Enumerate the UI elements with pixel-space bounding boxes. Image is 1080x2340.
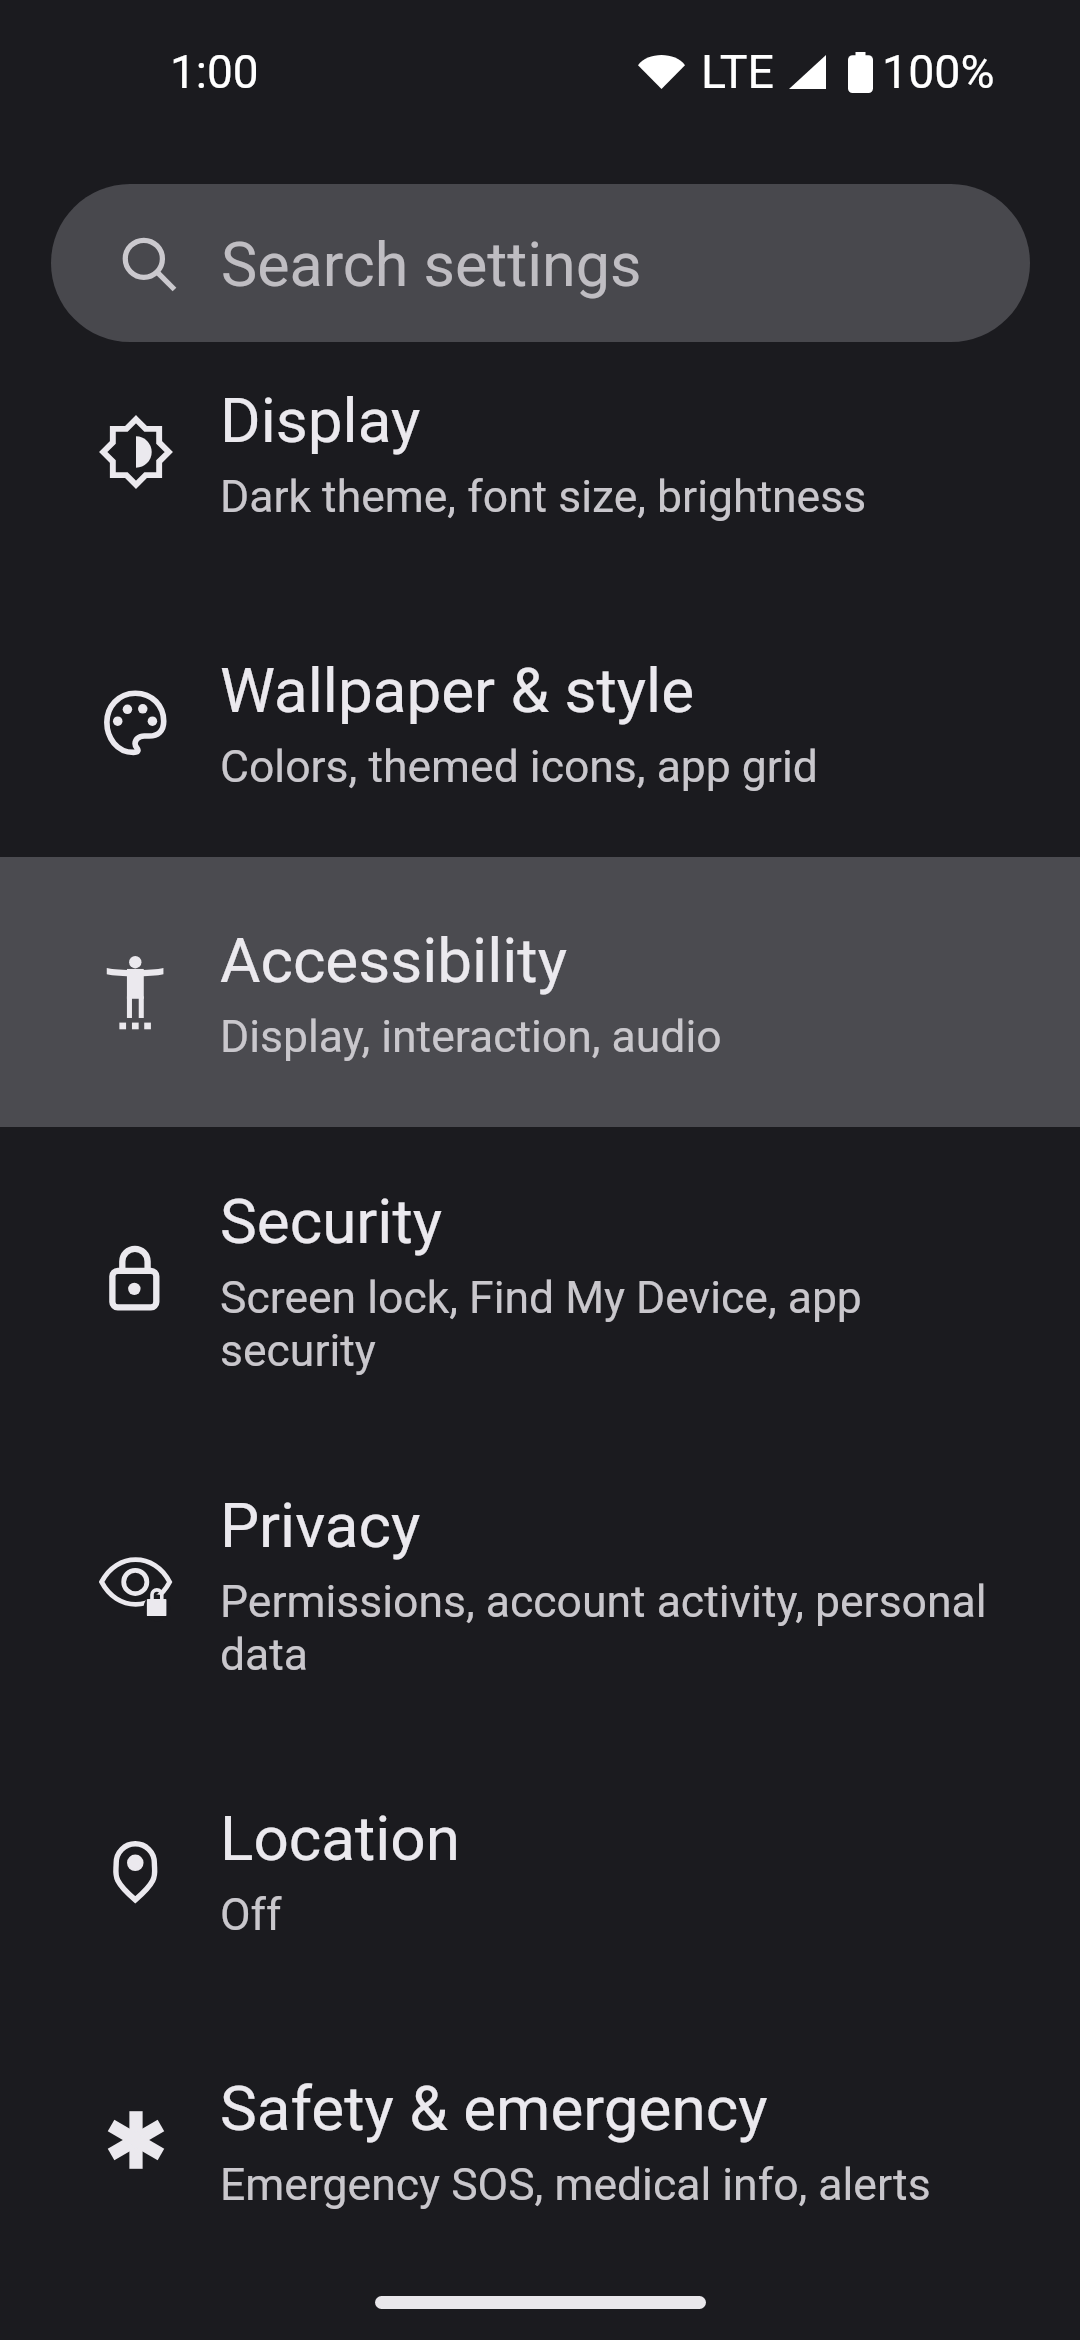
staticText: Security bbox=[220, 1185, 443, 1258]
staticText: Safety & emergency bbox=[220, 2072, 768, 2145]
staticText: Off bbox=[220, 1889, 282, 1941]
staticText: Wallpaper & style bbox=[220, 654, 695, 727]
staticText: Privacy bbox=[220, 1489, 421, 1562]
staticText: Dark theme, font size, brightness bbox=[220, 471, 867, 523]
staticText: Search settings bbox=[221, 229, 642, 300]
staticText: Accessibility bbox=[220, 924, 567, 997]
button[interactable]: Search settings bbox=[51, 184, 1030, 342]
staticText: Colors, themed icons, app grid bbox=[220, 741, 818, 793]
button[interactable]: Accessibility bbox=[0, 857, 1080, 1127]
staticText: Emergency SOS, medical info, alerts bbox=[220, 2159, 931, 2211]
staticText: Permissions, account activity, personal … bbox=[220, 1576, 1020, 1680]
button[interactable]: Location bbox=[0, 1735, 1080, 2005]
staticText: Display, interaction, audio bbox=[220, 1011, 722, 1063]
button[interactable]: Wallpaper & style bbox=[0, 587, 1080, 857]
staticText: LTE bbox=[701, 45, 774, 99]
staticText: Screen lock, Find My Device, app securit… bbox=[220, 1272, 1020, 1376]
staticText: 100% bbox=[882, 45, 995, 99]
button[interactable]: Safety & emergency bbox=[0, 2005, 1080, 2275]
button[interactable]: Display bbox=[0, 317, 1080, 587]
button[interactable]: Security bbox=[0, 1127, 1080, 1431]
button[interactable]: Privacy bbox=[0, 1431, 1080, 1735]
staticText: Display bbox=[220, 384, 421, 457]
staticText: 1:00 bbox=[170, 45, 259, 99]
staticText: Location bbox=[220, 1802, 460, 1875]
